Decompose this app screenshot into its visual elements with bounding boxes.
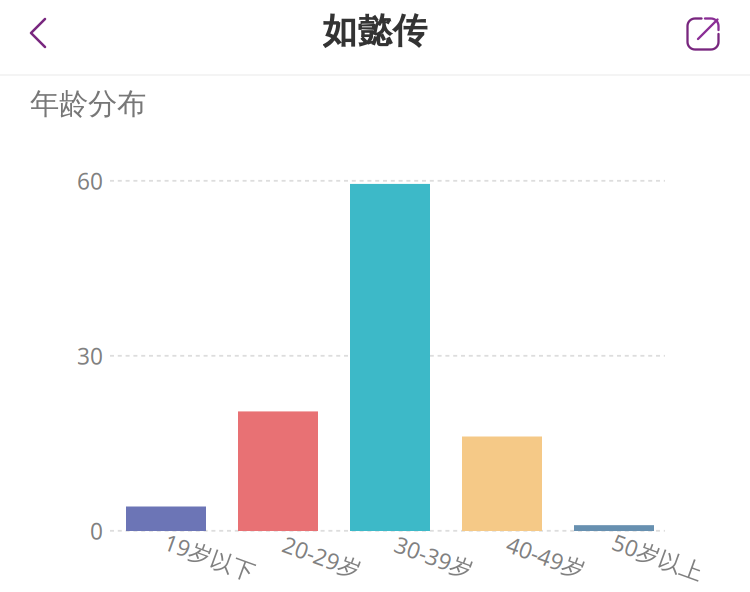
staticText: 如懿传 — [322, 10, 427, 52]
staticText: 50岁以上 — [610, 542, 705, 572]
staticText: 20-29岁 — [281, 542, 363, 572]
button[interactable]: Share — [667, 0, 739, 69]
staticText: 0 — [90, 516, 103, 546]
staticText: 30 — [77, 341, 103, 371]
staticText: 年龄分布 — [30, 86, 146, 122]
staticText: 60 — [77, 166, 103, 196]
staticText: 19岁以下 — [162, 542, 257, 572]
staticText: 40-49岁 — [505, 542, 587, 572]
button[interactable]: Back — [2, 0, 74, 68]
staticText: 30-39岁 — [393, 542, 475, 572]
